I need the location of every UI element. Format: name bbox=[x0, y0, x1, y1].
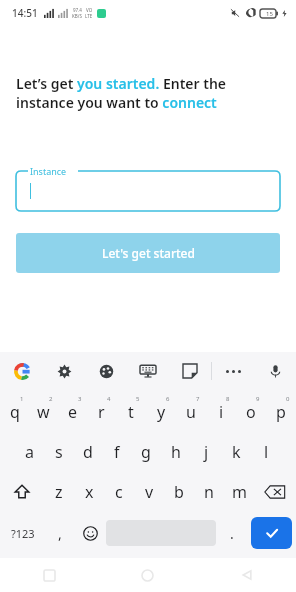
button[interactable]: Let's get started bbox=[16, 233, 280, 273]
staticText: 0 bbox=[286, 395, 290, 403]
button[interactable]: ?123 bbox=[0, 512, 45, 554]
button[interactable]: o bbox=[236, 392, 266, 432]
button[interactable]: m bbox=[224, 472, 254, 512]
button[interactable]: h bbox=[161, 432, 191, 472]
staticText: Instance bbox=[30, 165, 67, 177]
button[interactable]: r bbox=[87, 392, 116, 432]
staticText: . bbox=[230, 524, 234, 543]
button[interactable]: z bbox=[43, 472, 74, 512]
button[interactable]: Instance bbox=[16, 167, 280, 211]
staticText: k bbox=[232, 441, 241, 463]
staticText: 6 bbox=[166, 395, 170, 403]
button[interactable]: Backspace bbox=[254, 472, 296, 512]
staticText: r bbox=[98, 401, 105, 423]
staticText: m bbox=[232, 481, 247, 503]
staticText: p bbox=[276, 401, 286, 423]
button[interactable]: c bbox=[104, 472, 134, 512]
button[interactable]: y bbox=[146, 392, 176, 432]
staticText: s bbox=[55, 441, 63, 463]
staticText: ?123 bbox=[11, 526, 35, 541]
button[interactable]: a bbox=[15, 432, 44, 472]
button[interactable]: Enter bbox=[251, 517, 292, 549]
button[interactable]: b bbox=[164, 472, 194, 512]
staticText: o bbox=[246, 401, 256, 423]
staticText: 1 bbox=[20, 395, 24, 403]
button[interactable]: Stickers bbox=[169, 352, 211, 390]
button[interactable]: Voice input bbox=[254, 352, 296, 390]
staticText: 8 bbox=[226, 395, 230, 403]
staticText: v bbox=[145, 481, 154, 503]
button[interactable]: n bbox=[194, 472, 224, 512]
button[interactable]: Emoji bbox=[75, 512, 106, 554]
staticText: 4 bbox=[107, 395, 111, 403]
button[interactable]: e bbox=[58, 392, 87, 432]
staticText: 3 bbox=[78, 395, 82, 403]
button[interactable]: d bbox=[73, 432, 102, 472]
button[interactable]: p bbox=[266, 392, 296, 432]
button[interactable]: g bbox=[131, 432, 161, 472]
staticText: l bbox=[264, 441, 269, 463]
staticText: c bbox=[115, 481, 123, 503]
staticText: n bbox=[204, 481, 214, 503]
button[interactable]: s bbox=[44, 432, 73, 472]
button[interactable]: w bbox=[29, 392, 58, 432]
staticText: q bbox=[10, 401, 20, 423]
button[interactable]: Google bbox=[9, 358, 35, 384]
staticText: VO bbox=[86, 7, 93, 13]
button[interactable]: x bbox=[74, 472, 104, 512]
staticText: 14:51 bbox=[12, 6, 38, 20]
button[interactable]: , bbox=[45, 512, 75, 554]
staticText: u bbox=[186, 401, 196, 423]
staticText: e bbox=[68, 401, 78, 423]
staticText: KB/S bbox=[72, 13, 82, 19]
staticText: j bbox=[204, 441, 209, 463]
staticText: 5 bbox=[136, 395, 140, 403]
staticText: f bbox=[114, 441, 120, 463]
button[interactable]: Settings bbox=[43, 352, 85, 390]
staticText: g bbox=[141, 441, 151, 463]
staticText: t bbox=[128, 401, 134, 423]
staticText: 2 bbox=[49, 395, 53, 403]
staticText: 97.4 bbox=[73, 7, 82, 13]
staticText: 7 bbox=[196, 395, 200, 403]
button[interactable]: More options bbox=[212, 352, 254, 390]
staticText: 15 bbox=[266, 10, 273, 18]
button[interactable]: i bbox=[206, 392, 236, 432]
button[interactable]: l bbox=[251, 432, 281, 472]
staticText: Let's get started bbox=[102, 245, 195, 261]
button[interactable]: Keyboard bbox=[127, 352, 169, 390]
staticText: w bbox=[37, 401, 50, 423]
staticText: b bbox=[174, 481, 184, 503]
button[interactable]: v bbox=[134, 472, 164, 512]
staticText: , bbox=[58, 524, 62, 543]
button[interactable]: Themes bbox=[85, 352, 127, 390]
staticText: Let’s get you started. Enter the instanc… bbox=[16, 74, 280, 112]
button[interactable]: Shift bbox=[0, 472, 43, 512]
button[interactable]: k bbox=[221, 432, 251, 472]
staticText: d bbox=[83, 441, 93, 463]
staticText: i bbox=[219, 401, 224, 423]
staticText: y bbox=[157, 401, 166, 423]
staticText: h bbox=[171, 441, 181, 463]
staticText: a bbox=[25, 441, 34, 463]
staticText: 9 bbox=[256, 395, 260, 403]
staticText: LTE bbox=[85, 13, 93, 19]
button[interactable]: t bbox=[116, 392, 146, 432]
button[interactable]: . bbox=[216, 512, 247, 554]
staticText: z bbox=[55, 481, 63, 503]
staticText: x bbox=[85, 481, 94, 503]
button[interactable]: q bbox=[0, 392, 29, 432]
button[interactable]: j bbox=[191, 432, 221, 472]
button[interactable]: u bbox=[176, 392, 206, 432]
button[interactable]: f bbox=[102, 432, 131, 472]
